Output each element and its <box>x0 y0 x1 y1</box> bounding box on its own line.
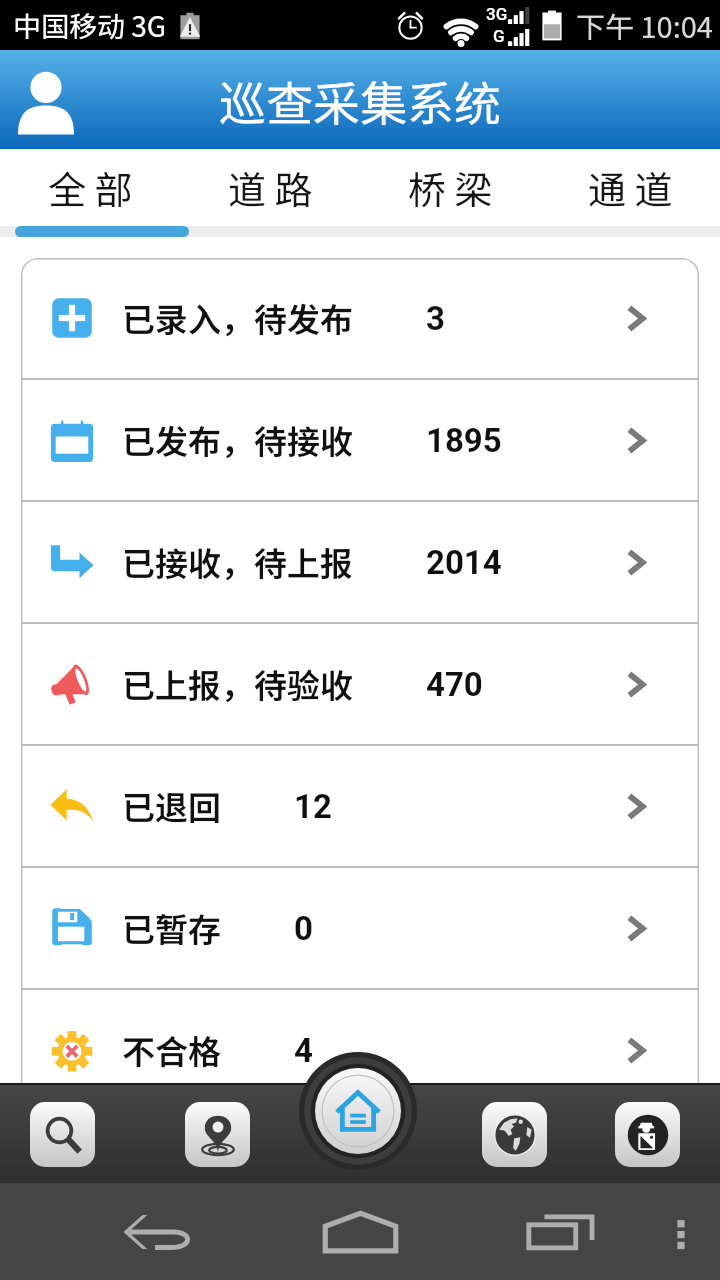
button[interactable]: 已接收，待上报 <box>21 502 699 622</box>
staticText: 已退回 <box>122 782 221 830</box>
staticText: G <box>493 26 505 46</box>
staticText: 通 道 <box>588 160 673 215</box>
staticText: 4 <box>294 1031 313 1070</box>
button[interactable]: 已退回 <box>21 746 699 866</box>
staticText: 巡查采集系统 <box>219 66 501 134</box>
button[interactable]: Recents <box>519 1193 603 1271</box>
staticText: 全 部 <box>48 160 133 215</box>
button[interactable]: 不合格 <box>21 990 699 1110</box>
button[interactable]: Back <box>120 1193 204 1271</box>
staticText: 已发布，待接收 <box>122 416 353 464</box>
button[interactable]: 已发布，待接收 <box>21 380 699 500</box>
staticText: 已接收，待上报 <box>122 538 353 586</box>
button[interactable]: 已录入，待发布 <box>21 258 699 378</box>
button[interactable]: Inspector <box>615 1102 680 1167</box>
button[interactable]: Home <box>318 1193 402 1271</box>
button[interactable]: 通 道 <box>540 149 720 226</box>
staticText: 470 <box>426 665 483 704</box>
button[interactable]: 全 部 <box>0 149 180 226</box>
staticText: 12 <box>294 787 332 826</box>
button[interactable]: 道 路 <box>180 149 360 226</box>
staticText: 已暂存 <box>122 904 221 952</box>
button[interactable]: Home <box>299 1061 417 1161</box>
staticText: 3 <box>426 299 445 338</box>
button[interactable]: Web <box>482 1102 547 1167</box>
button[interactable]: Search <box>30 1102 95 1167</box>
staticText: 桥 梁 <box>408 160 493 215</box>
staticText: 2014 <box>426 543 502 582</box>
staticText: 不合格 <box>122 1026 221 1074</box>
button[interactable]: More options <box>645 1193 717 1271</box>
button[interactable]: 桥 梁 <box>360 149 540 226</box>
staticText: 已上报，待验收 <box>122 660 353 708</box>
staticText: 0 <box>294 909 313 948</box>
staticText: 已录入，待发布 <box>122 294 353 342</box>
staticText: 下午 10:04 <box>576 4 713 46</box>
staticText: 1895 <box>426 421 502 460</box>
button[interactable]: 已暂存 <box>21 868 699 988</box>
staticText: 3G <box>486 4 508 24</box>
staticText: 中国移动 3G <box>13 5 167 46</box>
staticText: 道 路 <box>228 160 313 215</box>
button[interactable]: Profile <box>0 54 92 146</box>
button[interactable]: 已上报，待验收 <box>21 624 699 744</box>
button[interactable]: Location <box>185 1102 250 1167</box>
